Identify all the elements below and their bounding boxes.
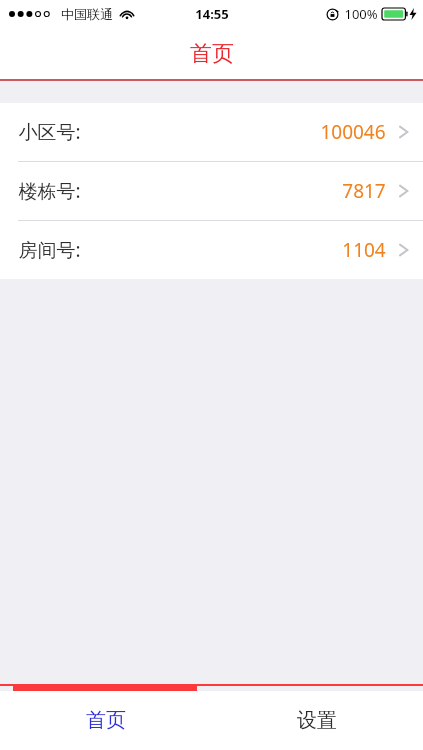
button[interactable]: 首页 <box>0 691 211 750</box>
staticText: 房间号: <box>18 237 81 263</box>
button[interactable]: 小区号: <box>0 103 423 161</box>
staticText: 14:55 <box>195 5 229 23</box>
staticText: 首页 <box>190 40 234 68</box>
staticText: 1104 <box>342 237 386 263</box>
other: Open <box>398 123 409 141</box>
other: Open <box>398 241 409 259</box>
staticText: 中国联通 <box>61 6 113 22</box>
other: Open <box>398 182 409 200</box>
button[interactable]: 设置 <box>211 691 423 750</box>
staticText: 100046 <box>320 119 386 145</box>
staticText: 楼栋号: <box>18 178 81 204</box>
staticText: 7817 <box>342 178 386 204</box>
button[interactable]: 楼栋号: <box>0 162 423 220</box>
staticText: 小区号: <box>18 119 81 145</box>
staticText: 设置 <box>297 708 337 733</box>
staticText: 100% <box>344 5 378 23</box>
staticText: 首页 <box>86 708 126 733</box>
button[interactable]: 房间号: <box>0 221 423 279</box>
